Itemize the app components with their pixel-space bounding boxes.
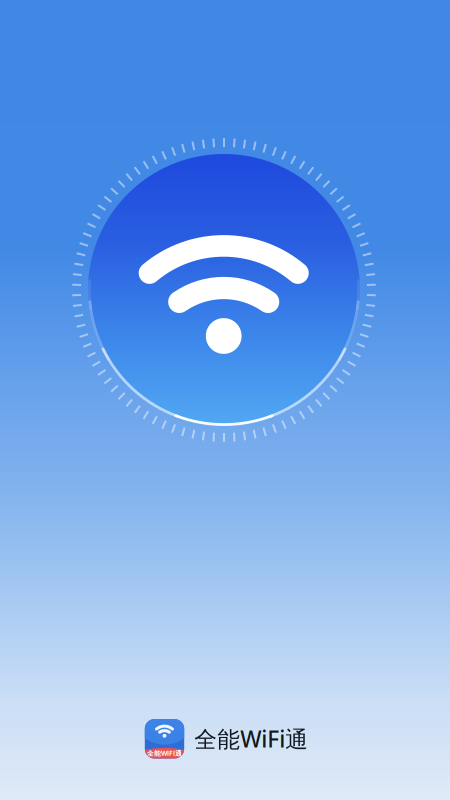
staticText: 全能WiFi通: [147, 749, 182, 758]
button[interactable]: 全能WiFi通: [145, 719, 308, 758]
staticText: 全能WiFi通: [194, 724, 308, 754]
